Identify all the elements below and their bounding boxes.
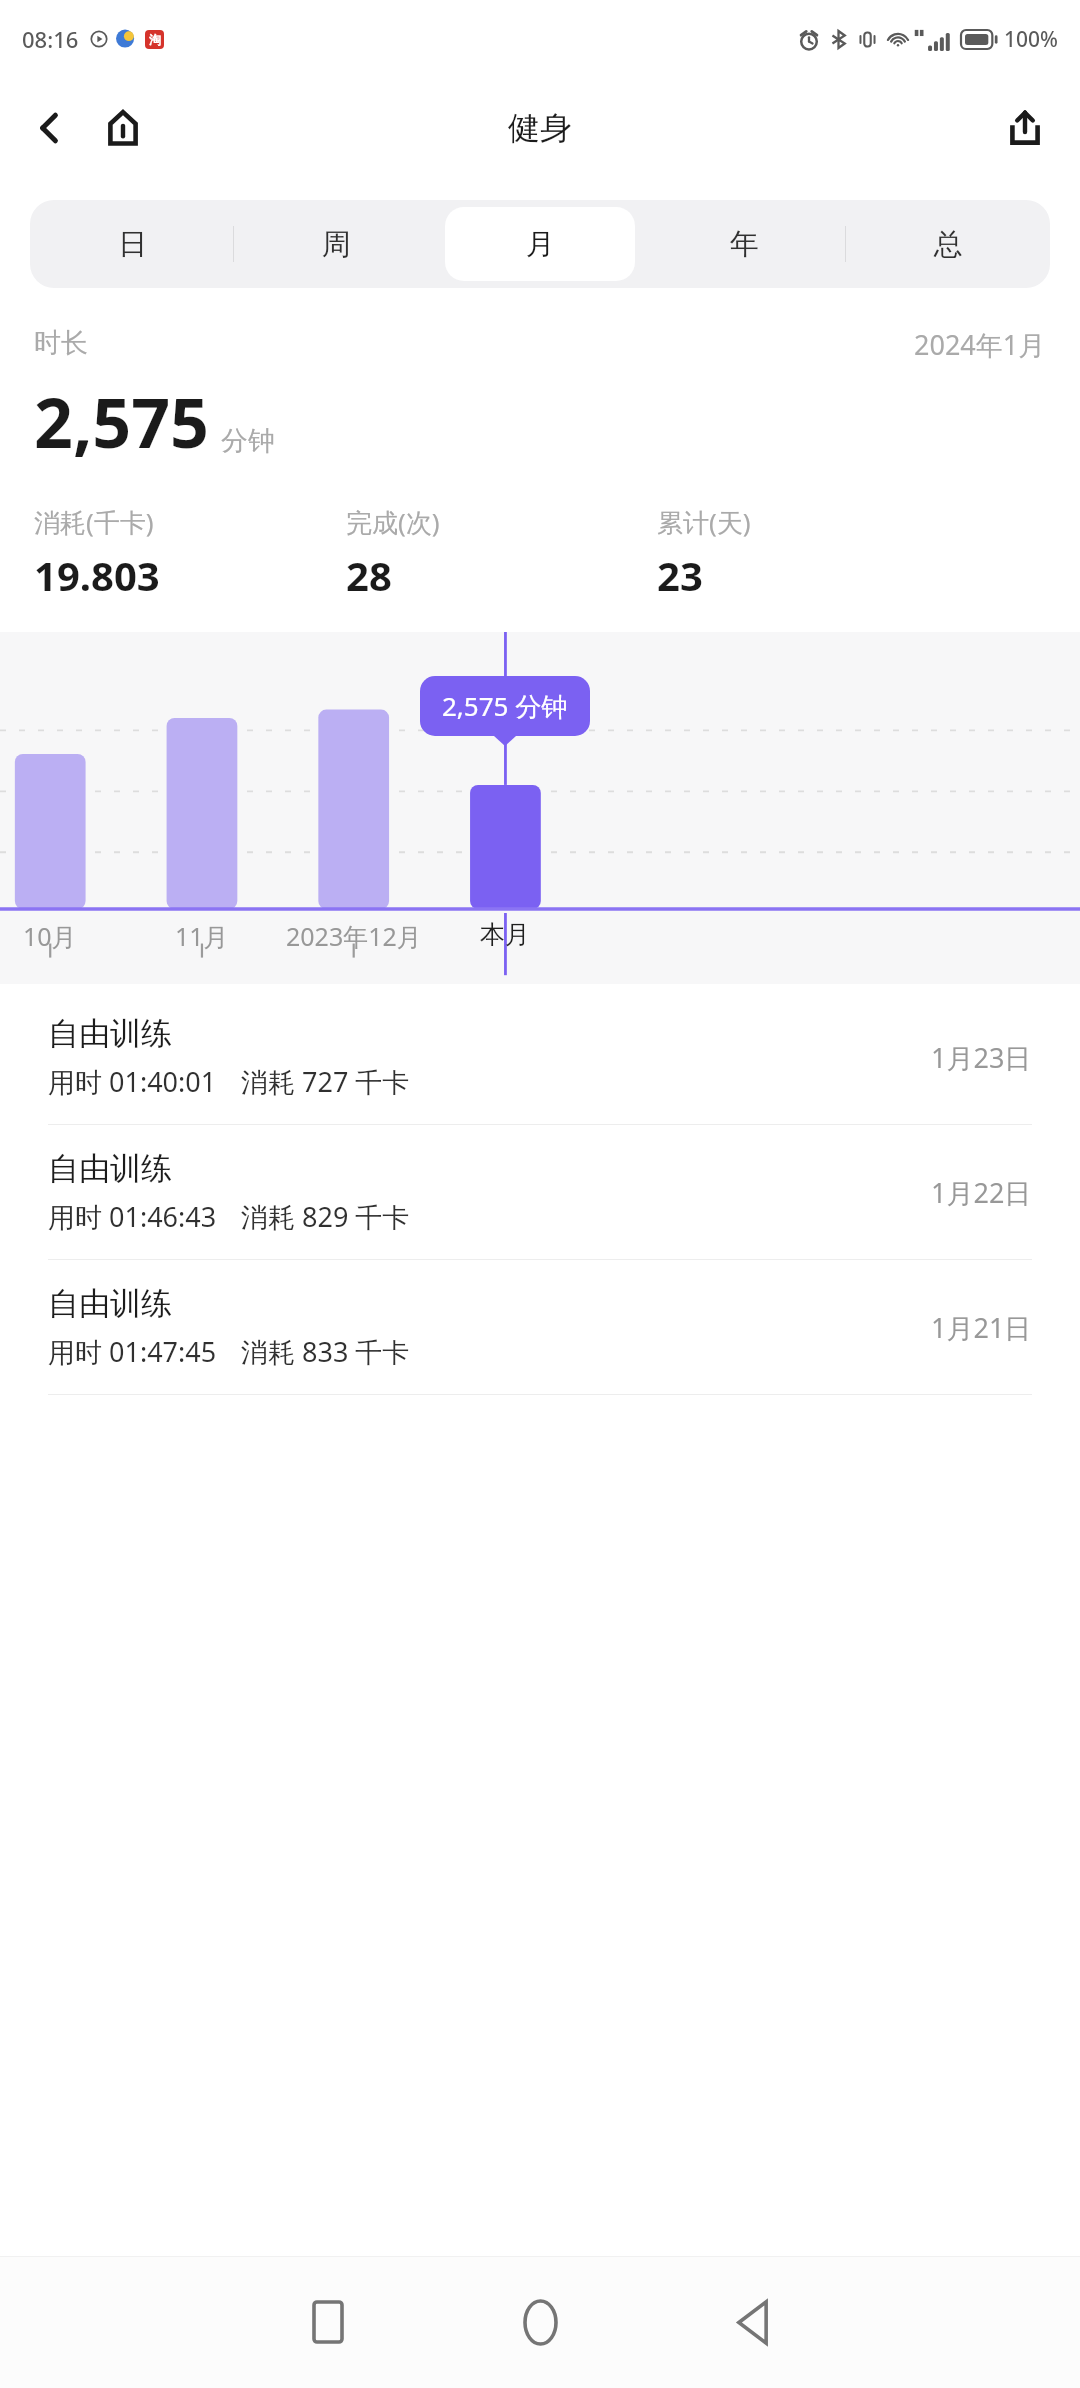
staticText: 完成(次) bbox=[346, 504, 440, 540]
staticText: 自由训练 bbox=[48, 1284, 172, 1323]
button[interactable]: 日 bbox=[37, 207, 227, 281]
staticText: 用时 01:46:43 bbox=[48, 1198, 217, 1235]
staticText: 用时 01:40:01 bbox=[48, 1063, 217, 1100]
staticText: 周 bbox=[322, 226, 351, 263]
staticText: 28 bbox=[346, 548, 392, 602]
staticText: 2024年1月 bbox=[914, 326, 1046, 363]
button[interactable]: 自由训练 bbox=[0, 1125, 1080, 1259]
button[interactable]: 总 bbox=[853, 207, 1043, 281]
staticText: 健身 bbox=[508, 108, 572, 148]
staticText: 100% bbox=[1004, 25, 1058, 54]
staticText: 消耗(千卡) bbox=[34, 504, 154, 540]
staticText: 淘 bbox=[149, 32, 161, 47]
staticText: 1月22日 bbox=[931, 1174, 1032, 1211]
button[interactable]: 月 bbox=[445, 207, 635, 281]
button[interactable]: Back bbox=[696, 2266, 808, 2378]
staticText: 时长 bbox=[34, 326, 88, 360]
staticText: 消耗 829 千卡 bbox=[241, 1198, 410, 1235]
staticText: 消耗 833 千卡 bbox=[241, 1333, 410, 1370]
staticText: 1月23日 bbox=[931, 1039, 1032, 1076]
button[interactable]: Home bbox=[484, 2266, 596, 2378]
staticText: 总 bbox=[934, 226, 963, 263]
button[interactable]: 年 bbox=[649, 207, 839, 281]
staticText: 月 bbox=[526, 226, 555, 263]
button[interactable]: Home bbox=[88, 93, 158, 163]
staticText: 累计(天) bbox=[657, 504, 751, 540]
button[interactable]: 2,575 分钟 bbox=[420, 676, 590, 736]
staticText: 用时 01:47:45 bbox=[48, 1333, 217, 1370]
staticText: 2023年12月 bbox=[286, 919, 422, 953]
staticText: 自由训练 bbox=[48, 1014, 172, 1053]
staticText: 1月21日 bbox=[931, 1309, 1032, 1346]
staticText: 19.803 bbox=[34, 548, 160, 602]
staticText: 消耗 727 千卡 bbox=[241, 1063, 410, 1100]
button[interactable]: 自由训练 bbox=[0, 1260, 1080, 1394]
staticText: 自由训练 bbox=[48, 1149, 172, 1188]
staticText: 11月 bbox=[175, 919, 229, 953]
button[interactable]: Recents bbox=[272, 2266, 384, 2378]
staticText: 23 bbox=[657, 548, 703, 602]
staticText: 2,575 分钟 bbox=[442, 688, 568, 724]
button[interactable]: 周 bbox=[241, 207, 431, 281]
staticText: 2,575 bbox=[34, 375, 209, 468]
button[interactable]: Back bbox=[14, 93, 84, 163]
staticText: 本月 bbox=[480, 919, 530, 950]
staticText: 10月 bbox=[23, 919, 77, 953]
staticText: 年 bbox=[730, 226, 759, 263]
staticText: 分钟 bbox=[221, 424, 275, 458]
button[interactable]: 自由训练 bbox=[0, 990, 1080, 1124]
staticText: 08:16 bbox=[22, 24, 79, 54]
staticText: 日 bbox=[118, 226, 147, 263]
button[interactable]: Share bbox=[990, 93, 1060, 163]
